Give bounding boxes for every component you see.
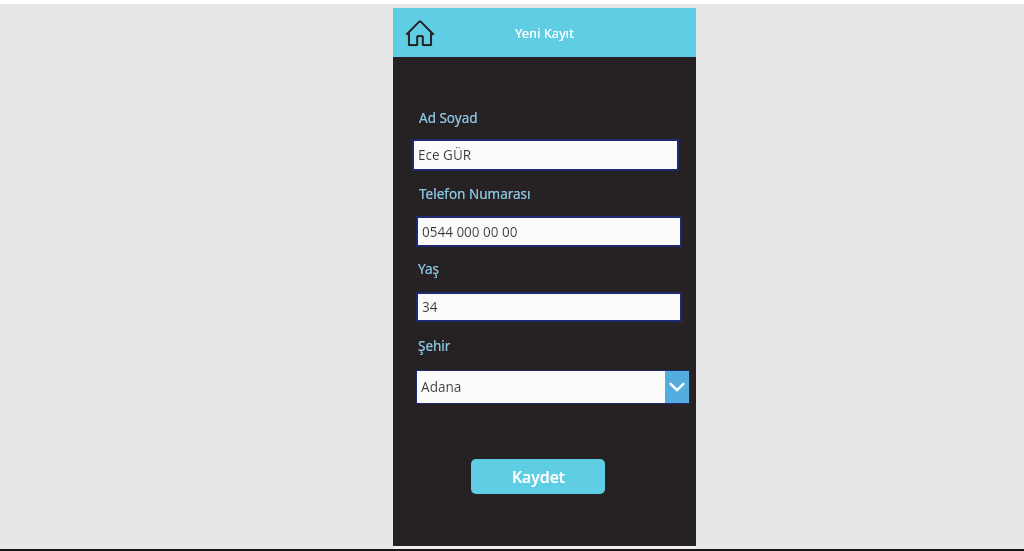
button[interactable]: Home bbox=[404, 17, 436, 49]
button[interactable]: 34 bbox=[416, 292, 682, 322]
button[interactable]: Kaydet bbox=[471, 459, 605, 494]
staticText: Adana bbox=[421, 378, 462, 396]
staticText: 34 bbox=[422, 298, 438, 316]
staticText: Ad Soyad bbox=[419, 109, 478, 127]
staticText: Şehir bbox=[418, 337, 451, 355]
button[interactable]: 0544 000 00 00 bbox=[416, 216, 682, 247]
staticText: Ece GÜR bbox=[418, 146, 472, 164]
button[interactable]: Adana bbox=[416, 370, 690, 404]
button[interactable]: Ece GÜR bbox=[412, 139, 679, 171]
staticText: Kaydet bbox=[512, 466, 565, 488]
staticText: 0544 000 00 00 bbox=[422, 223, 518, 241]
button[interactable]: Open city dropdown bbox=[665, 371, 689, 403]
staticText: Yaş bbox=[418, 260, 440, 278]
staticText: Telefon Numarası bbox=[419, 185, 531, 203]
staticText: Yeni Kayıt bbox=[515, 24, 574, 42]
